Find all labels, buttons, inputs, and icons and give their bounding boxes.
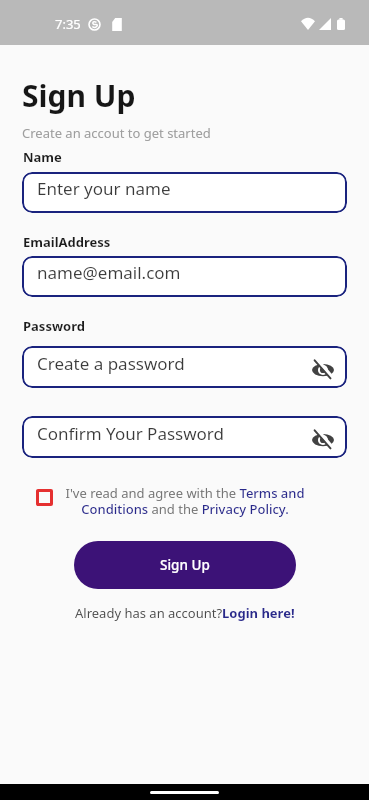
staticText: name@email.com bbox=[37, 261, 181, 284]
staticText: Name bbox=[23, 148, 62, 166]
button[interactable]: I've read and agree with the Terms and C… bbox=[22, 484, 347, 517]
button[interactable]: Create a password bbox=[22, 346, 347, 388]
staticText: 7:35 bbox=[55, 15, 81, 33]
staticText: Confirm Your Password bbox=[37, 422, 224, 445]
button[interactable]: Sign Up bbox=[74, 541, 296, 589]
button[interactable]: Confirm Your Password bbox=[22, 416, 347, 458]
staticText: Create an accout to get started bbox=[22, 124, 211, 142]
staticText: EmailAddress bbox=[23, 233, 111, 251]
button[interactable]: Already has an account?Login here! bbox=[75, 604, 295, 622]
staticText: Create a password bbox=[37, 352, 185, 375]
button[interactable]: Enter your name bbox=[22, 172, 347, 213]
button[interactable]: name@email.com bbox=[22, 256, 347, 297]
staticText: Password bbox=[23, 317, 85, 335]
staticText: I've read and agree with the Terms and C… bbox=[65, 484, 305, 517]
staticText: Sign Up bbox=[160, 556, 210, 574]
staticText: Enter your name bbox=[37, 177, 171, 200]
staticText: Sign Up bbox=[22, 75, 136, 116]
